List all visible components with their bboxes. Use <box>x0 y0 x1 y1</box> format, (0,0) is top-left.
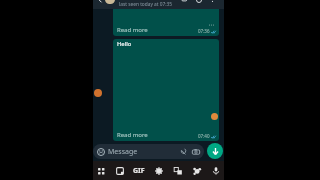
button[interactable]: Read more <box>113 9 219 36</box>
button[interactable]: More options <box>207 0 217 4</box>
staticText: Read more <box>117 131 148 139</box>
button[interactable]: Back <box>93 0 224 9</box>
button[interactable]: Camera <box>191 147 200 156</box>
button[interactable]: Attach <box>179 147 188 156</box>
staticText: GIF <box>133 166 145 176</box>
button[interactable]: Apps <box>93 163 109 179</box>
button[interactable]: Settings <box>151 163 167 179</box>
button[interactable]: Back <box>96 0 106 4</box>
button[interactable]: Video call <box>180 0 190 4</box>
staticText: 07:40 <box>198 133 210 139</box>
staticText: 07:36 <box>198 28 210 34</box>
staticText: Hello <box>117 40 132 48</box>
button[interactable]: Clipboard <box>170 163 186 179</box>
button[interactable]: Profile photo <box>105 0 115 4</box>
staticText: last seen today at 07:35 <box>119 1 173 8</box>
button[interactable]: Voice call <box>194 0 204 4</box>
button[interactable]: Emoji <box>189 163 205 179</box>
button[interactable]: Voice message <box>207 143 223 159</box>
button[interactable]: GIF <box>131 163 147 179</box>
button[interactable]: Message <box>93 144 204 159</box>
button[interactable]: Stickers <box>112 163 128 179</box>
staticText: Read more <box>117 26 148 34</box>
button[interactable]: Voice input <box>208 163 224 179</box>
staticText: Message <box>108 147 138 157</box>
button[interactable]: Hello <box>113 39 219 141</box>
